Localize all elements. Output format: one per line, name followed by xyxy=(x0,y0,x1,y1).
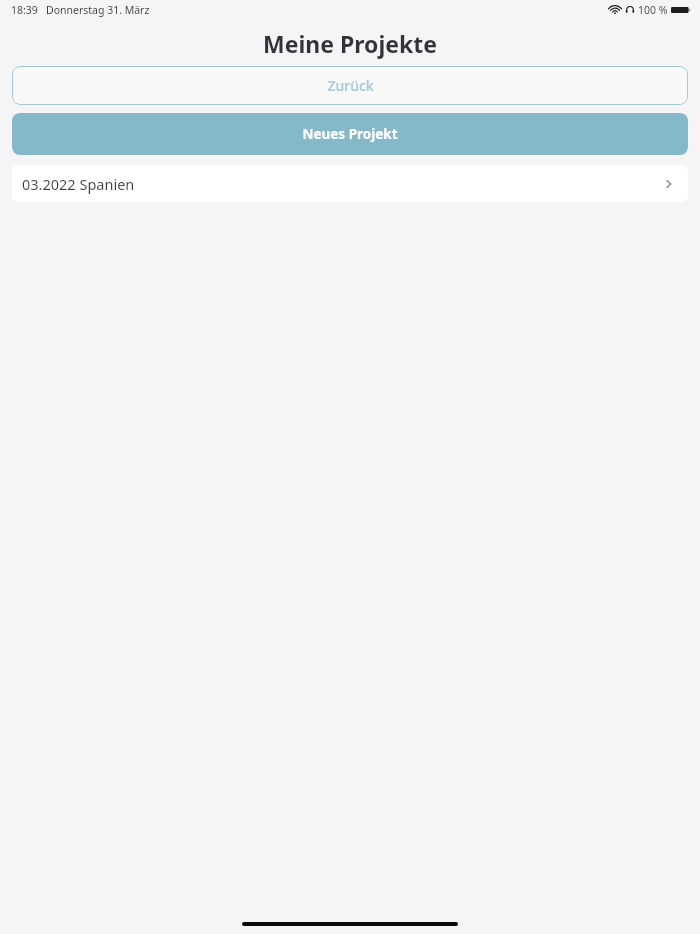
staticText: 03.2022 Spanien xyxy=(22,174,135,194)
other: Projekt öffnen xyxy=(662,177,676,191)
button[interactable]: Neues Projekt xyxy=(12,113,688,155)
staticText: Zurück xyxy=(327,76,374,95)
staticText: Neues Projekt xyxy=(302,125,398,143)
button[interactable]: 03.2022 Spanien xyxy=(12,165,688,202)
staticText: Meine Projekte xyxy=(263,28,437,59)
staticText: Donnerstag 31. März xyxy=(46,3,150,17)
staticText: 18:39 xyxy=(11,3,38,17)
button[interactable]: Zurück xyxy=(12,66,688,105)
staticText: 100 % xyxy=(638,3,668,17)
